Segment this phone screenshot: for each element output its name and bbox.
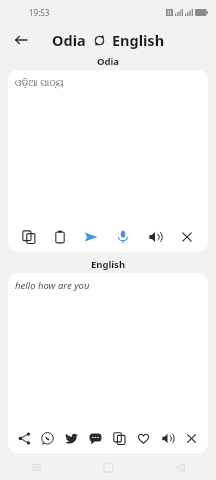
button[interactable]: Share: [13, 423, 36, 453]
staticText: Odia: [0, 55, 216, 68]
button[interactable]: Clear: [171, 222, 203, 252]
button[interactable]: English: [112, 30, 165, 50]
button[interactable]: Swap languages: [90, 31, 108, 49]
button[interactable]: Back: [9, 28, 33, 52]
button[interactable]: ଓଡ଼ିଆ ପାଠ୍ୟ: [15, 76, 64, 89]
button[interactable]: hello how are you: [15, 279, 90, 292]
staticText: 19:53: [29, 7, 50, 18]
button[interactable]: Copy: [13, 222, 44, 252]
button[interactable]: Copy: [107, 423, 131, 453]
button[interactable]: Close: [179, 423, 203, 453]
button[interactable]: Twitter: [59, 423, 83, 453]
button[interactable]: Favorite: [131, 423, 155, 453]
button[interactable]: Speak: [155, 423, 179, 453]
button[interactable]: SMS: [83, 423, 107, 453]
button[interactable]: Paste: [44, 222, 75, 252]
button[interactable]: Speak: [139, 222, 171, 252]
staticText: English: [0, 258, 216, 271]
button[interactable]: Voice input: [107, 222, 139, 252]
button[interactable]: Odia: [52, 30, 86, 50]
button[interactable]: WhatsApp: [36, 423, 59, 453]
button[interactable]: Translate: [75, 222, 107, 252]
